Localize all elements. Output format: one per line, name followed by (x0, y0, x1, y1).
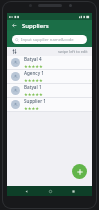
staticText: Batyal 4 (24, 56, 42, 62)
staticText: Agency 1 (24, 70, 44, 76)
staticText: ★★★★★ (24, 78, 43, 83)
staticText: Supplier 1 (24, 98, 46, 104)
button[interactable]: Batyal 4 (7, 56, 92, 69)
staticText: swipe left to edit (58, 49, 88, 54)
button[interactable]: Agency 1 (7, 70, 92, 83)
button[interactable]: Supplier 1 (7, 98, 92, 111)
button[interactable]: Recent apps (69, 187, 77, 195)
staticText: Suppliers (22, 22, 49, 30)
button[interactable]: Add supplier (72, 164, 87, 179)
button[interactable]: Back (10, 21, 19, 30)
staticText: Batyal 1 (24, 84, 42, 90)
button[interactable]: Batyal 1 (7, 84, 92, 97)
button[interactable]: Home (46, 187, 54, 195)
button[interactable]: Sort (11, 48, 18, 55)
button[interactable]: Back (22, 187, 30, 195)
staticText: ★★★★ (24, 106, 40, 111)
button[interactable]: Input supplier name&code (12, 35, 87, 44)
staticText: ★★★★★ (24, 64, 43, 69)
staticText: ★★★★★ (24, 92, 43, 97)
staticText: Input supplier name&code (21, 37, 74, 43)
